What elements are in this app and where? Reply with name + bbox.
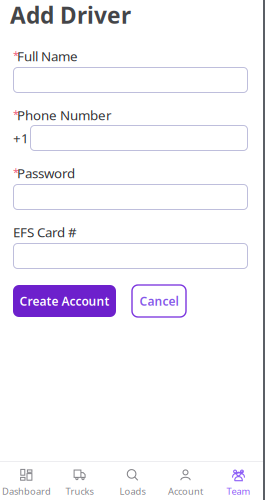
staticText: Team	[226, 485, 250, 497]
button[interactable]: Trucks	[53, 462, 106, 500]
staticText: Full Name	[17, 47, 78, 65]
button[interactable]: Team	[212, 462, 265, 500]
button[interactable]: Create Account	[13, 285, 116, 317]
staticText: +1	[13, 129, 29, 147]
staticText: Add Driver	[10, 0, 131, 30]
button[interactable]: Account	[159, 462, 212, 500]
staticText: Loads	[119, 485, 145, 497]
staticText: Cancel	[139, 293, 178, 309]
staticText: Create Account	[19, 293, 109, 309]
button[interactable]: Cancel	[132, 285, 186, 317]
staticText: Account	[168, 485, 203, 497]
button[interactable]: Dashboard	[0, 462, 53, 500]
staticText: *	[13, 165, 19, 179]
staticText: *	[13, 107, 19, 121]
staticText: *	[13, 48, 19, 62]
staticText: Trucks	[65, 485, 93, 497]
button[interactable]: Loads	[106, 462, 159, 500]
staticText: Phone Number	[17, 106, 112, 124]
staticText: EFS Card #	[13, 223, 77, 241]
staticText: Dashboard	[2, 485, 51, 497]
staticText: Password	[17, 164, 75, 182]
